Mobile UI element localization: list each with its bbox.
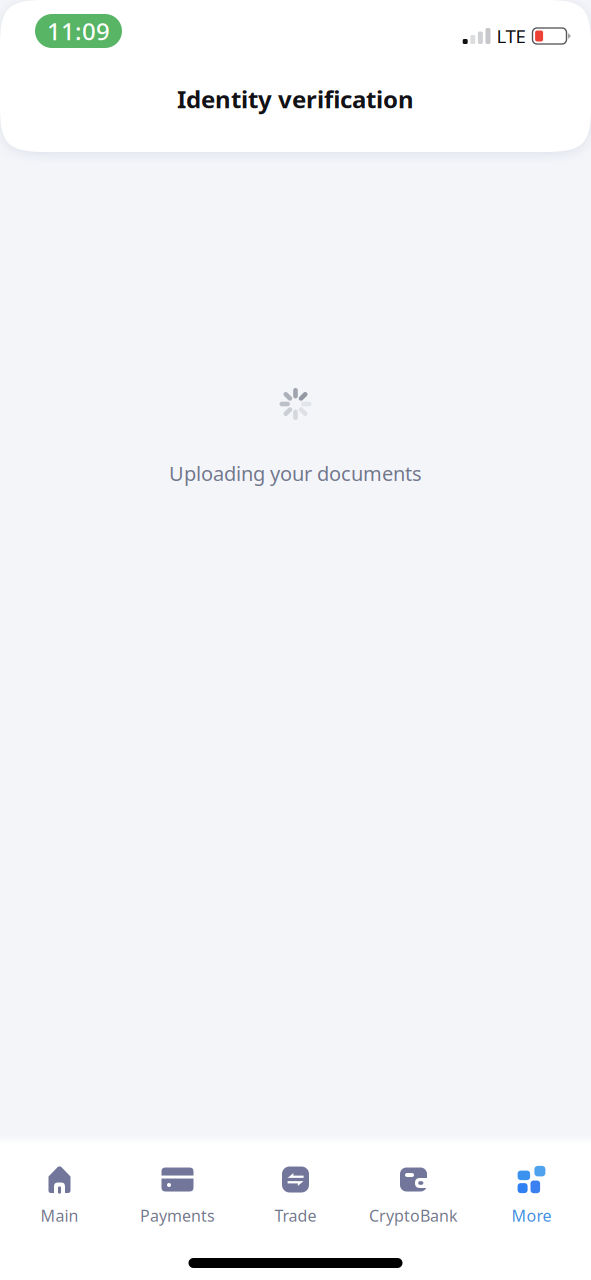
- button[interactable]: Payments: [118, 1146, 236, 1240]
- staticText: LTE: [496, 24, 525, 48]
- staticText: 11:09: [47, 15, 110, 47]
- staticText: Payments: [140, 1205, 215, 1226]
- staticText: Identity verification: [177, 83, 414, 115]
- button[interactable]: CryptoBank: [354, 1146, 472, 1240]
- button[interactable]: Main: [0, 1146, 118, 1240]
- staticText: Main: [40, 1205, 78, 1226]
- staticText: CryptoBank: [369, 1205, 458, 1226]
- staticText: Uploading your documents: [169, 460, 422, 487]
- staticText: More: [511, 1205, 551, 1226]
- button[interactable]: More: [472, 1146, 590, 1240]
- button[interactable]: Trade: [236, 1146, 354, 1240]
- staticText: Trade: [274, 1205, 316, 1226]
